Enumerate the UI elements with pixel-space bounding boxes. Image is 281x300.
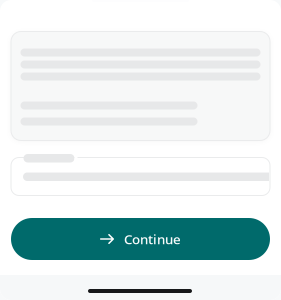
button[interactable]: Continue xyxy=(11,218,270,260)
staticText: Continue xyxy=(124,230,181,248)
